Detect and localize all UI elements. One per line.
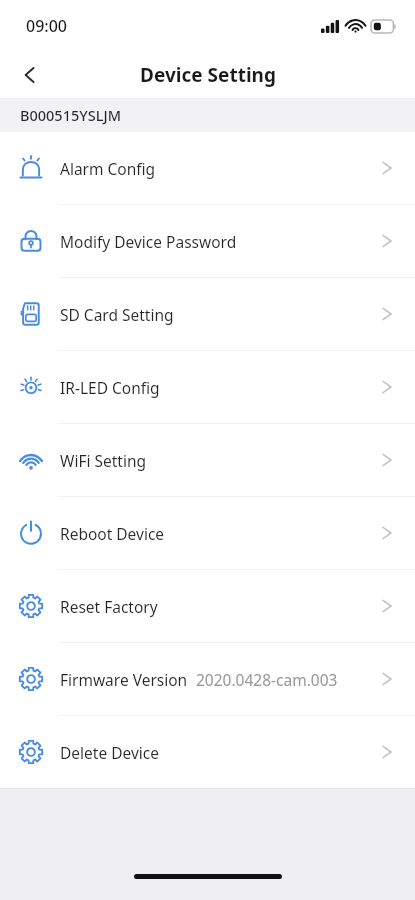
staticText: 09:00 <box>26 15 67 37</box>
staticText: Reboot Device <box>60 523 165 544</box>
staticText: 2020.0428-cam.003 <box>196 669 338 690</box>
staticText: SD Card Setting <box>60 304 174 325</box>
button[interactable]: SD Card Setting <box>0 278 415 350</box>
button[interactable]: IR-LED Config <box>0 351 415 423</box>
staticText: WiFi Setting <box>60 450 147 471</box>
button[interactable]: Delete Device <box>0 716 415 788</box>
button[interactable]: Firmware Version <box>0 643 415 715</box>
button[interactable]: Back <box>10 55 50 95</box>
staticText: Modify Device Password <box>60 231 237 252</box>
button[interactable]: Reboot Device <box>0 497 415 569</box>
staticText: Device Setting <box>140 62 276 88</box>
staticText: Alarm Config <box>60 158 156 179</box>
button[interactable]: WiFi Setting <box>0 424 415 496</box>
button[interactable]: Alarm Config <box>0 132 415 204</box>
staticText: IR-LED Config <box>60 377 160 398</box>
button[interactable]: Reset Factory <box>0 570 415 642</box>
staticText: B000515YSLJM <box>20 105 121 125</box>
staticText: Delete Device <box>60 742 159 763</box>
staticText: Reset Factory <box>60 596 158 617</box>
staticText: Firmware Version <box>60 669 188 690</box>
button[interactable]: Modify Device Password <box>0 205 415 277</box>
